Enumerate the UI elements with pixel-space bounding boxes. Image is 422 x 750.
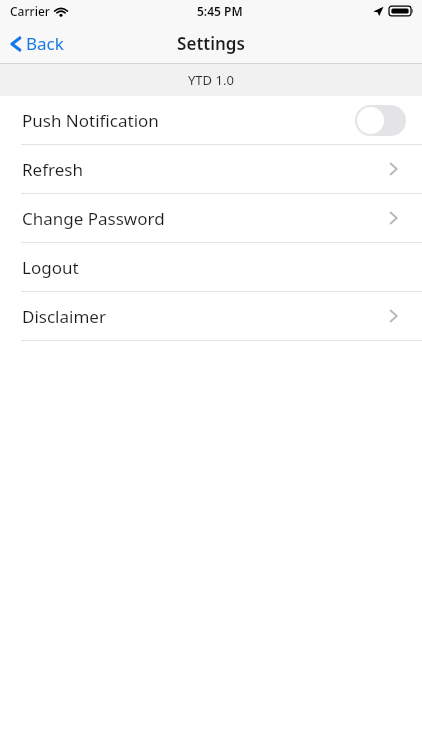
staticText: Change Password <box>22 207 165 230</box>
button[interactable]: Push Notification <box>0 96 422 144</box>
button[interactable]: Push Notification toggle, off <box>355 105 406 136</box>
staticText: Logout <box>22 256 79 279</box>
button[interactable]: Change Password <box>0 194 422 242</box>
staticText: Settings <box>0 32 422 55</box>
staticText: YTD 1.0 <box>188 71 234 89</box>
other: Open <box>380 205 406 231</box>
staticText: Push Notification <box>22 109 159 132</box>
staticText: Back <box>26 32 64 55</box>
button[interactable]: Refresh <box>0 145 422 193</box>
staticText: 5:45 PM <box>197 3 243 19</box>
other: Open <box>380 303 406 329</box>
button[interactable]: Back <box>0 26 76 61</box>
staticText: Carrier <box>10 3 50 19</box>
other: Open <box>380 156 406 182</box>
button[interactable]: Disclaimer <box>0 292 422 340</box>
staticText: Disclaimer <box>22 305 106 328</box>
button[interactable]: Logout <box>0 243 422 291</box>
staticText: Refresh <box>22 158 83 181</box>
